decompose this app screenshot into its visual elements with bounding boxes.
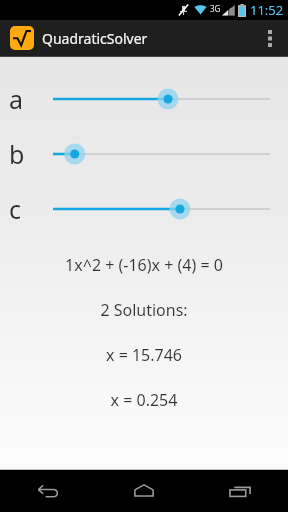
staticText: a [9, 82, 24, 116]
button[interactable]: Recents [192, 470, 288, 512]
button[interactable]: c [0, 181, 288, 236]
staticText: 2 Solutions: [0, 299, 288, 321]
staticText: QuadraticSolver [42, 29, 148, 48]
button[interactable]: More options [252, 20, 288, 56]
staticText: 11:52 [250, 1, 284, 19]
staticText: 3G [210, 3, 221, 14]
button[interactable]: Home [96, 470, 192, 512]
button[interactable]: Back [0, 470, 96, 512]
staticText: x = 0.254 [0, 389, 288, 411]
staticText: x = 15.746 [0, 344, 288, 366]
staticText: 1x^2 + (-16)x + (4) = 0 [0, 254, 288, 276]
button[interactable]: a [0, 71, 288, 126]
button[interactable]: b [0, 126, 288, 181]
staticText: b [9, 137, 25, 171]
staticText: c [9, 192, 22, 226]
